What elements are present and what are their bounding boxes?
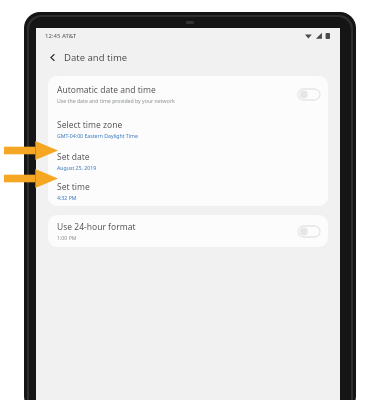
staticText: 12:45 AT&T <box>45 32 77 40</box>
staticText: 4:32 PM <box>57 194 77 201</box>
button[interactable]: Use 24-hour format <box>48 215 328 247</box>
button[interactable]: Set time <box>48 176 328 206</box>
staticText: Date and time <box>64 51 128 64</box>
button[interactable]: Back <box>43 48 61 66</box>
staticText: Set time <box>57 181 90 193</box>
staticText: Automatic date and time <box>57 84 156 96</box>
button[interactable]: Automatic date and time <box>48 76 328 112</box>
button[interactable]: Toggle <box>298 89 320 100</box>
staticText: Use the date and time provided by your n… <box>57 97 175 104</box>
button[interactable]: Set date <box>48 145 328 176</box>
staticText: Set date <box>57 151 90 163</box>
staticText: Select time zone <box>57 119 123 131</box>
staticText: Use 24-hour format <box>57 221 136 233</box>
staticText: GMT-04:00 Eastern Daylight Time <box>57 132 138 139</box>
button[interactable]: Toggle <box>298 226 320 237</box>
staticText: August 25, 2019 <box>57 164 97 171</box>
staticText: 1:00 PM <box>57 234 77 241</box>
button[interactable]: Select time zone <box>48 112 328 145</box>
